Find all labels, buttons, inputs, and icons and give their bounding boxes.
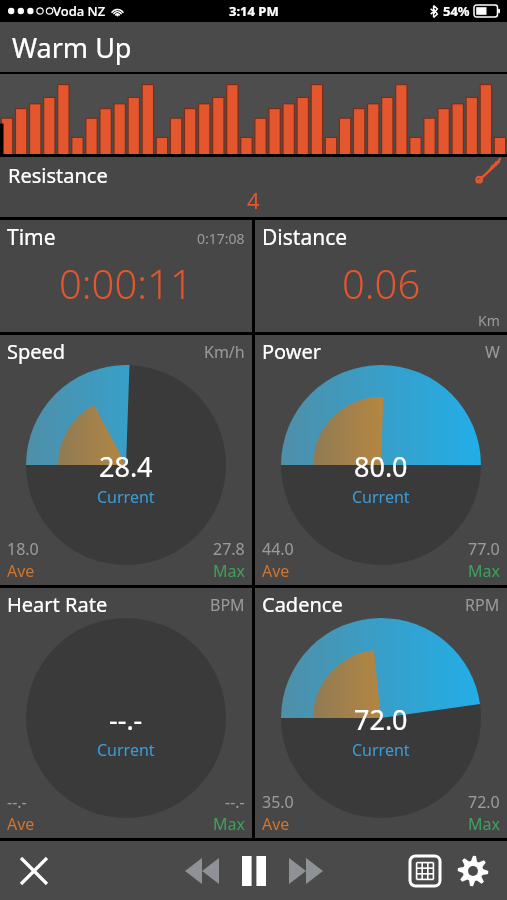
button[interactable]: Power: [255, 335, 507, 585]
staticText: Max: [213, 560, 245, 582]
staticText: Ave: [262, 560, 290, 582]
staticText: 44.0: [262, 538, 294, 560]
button[interactable]: Grid layout: [401, 847, 449, 895]
button[interactable]: Heart Rate: [0, 588, 252, 838]
staticText: Current: [97, 486, 155, 508]
staticText: Max: [468, 813, 500, 835]
button[interactable]: Settings: [449, 847, 497, 895]
staticText: 80.0: [354, 448, 408, 485]
staticText: Km/h: [204, 341, 245, 363]
staticText: 4: [247, 185, 260, 215]
staticText: --.-: [225, 791, 245, 813]
staticText: RPM: [465, 594, 500, 616]
staticText: Voda NZ: [53, 2, 106, 20]
staticText: Ave: [262, 813, 290, 835]
staticText: 72.0: [468, 791, 500, 813]
staticText: Current: [97, 739, 155, 761]
button[interactable]: Forward: [280, 845, 332, 897]
button[interactable]: Pause: [228, 845, 280, 897]
staticText: --.-: [7, 791, 27, 813]
staticText: 18.0: [7, 538, 39, 560]
button[interactable]: Speed: [0, 335, 252, 585]
button[interactable]: Resistance: [0, 157, 507, 217]
button[interactable]: Warm Up: [0, 22, 507, 72]
button[interactable]: Cadence: [255, 588, 507, 838]
button[interactable]: Close: [12, 849, 56, 893]
other: Resistance adjust: [473, 159, 501, 187]
staticText: Ave: [7, 560, 35, 582]
staticText: Current: [352, 486, 410, 508]
staticText: Km: [478, 311, 500, 330]
staticText: Resistance: [8, 162, 108, 189]
staticText: Max: [468, 560, 500, 582]
button[interactable]: Rewind: [176, 845, 228, 897]
staticText: 0:17:08: [197, 229, 245, 248]
button[interactable]: Distance: [255, 220, 507, 332]
staticText: Current: [352, 739, 410, 761]
staticText: W: [485, 341, 500, 363]
staticText: 27.8: [213, 538, 245, 560]
staticText: 0.06: [342, 256, 421, 310]
staticText: Speed: [7, 338, 66, 365]
staticText: BPM: [210, 594, 245, 616]
staticText: 35.0: [262, 791, 294, 813]
staticText: 77.0: [468, 538, 500, 560]
staticText: 54%: [443, 2, 470, 20]
staticText: Power: [262, 338, 322, 365]
button[interactable]: Time: [0, 220, 252, 332]
staticText: 28.4: [99, 448, 153, 485]
staticText: --.-: [109, 701, 143, 738]
staticText: 3:14 PM: [229, 2, 279, 20]
staticText: Max: [213, 813, 245, 835]
staticText: Heart Rate: [7, 591, 108, 618]
staticText: Distance: [262, 223, 348, 252]
staticText: Ave: [7, 813, 35, 835]
staticText: 0:00:11: [59, 256, 193, 310]
staticText: Warm Up: [12, 29, 132, 66]
staticText: Time: [7, 223, 56, 252]
staticText: 72.0: [354, 701, 408, 738]
staticText: Cadence: [262, 591, 343, 618]
